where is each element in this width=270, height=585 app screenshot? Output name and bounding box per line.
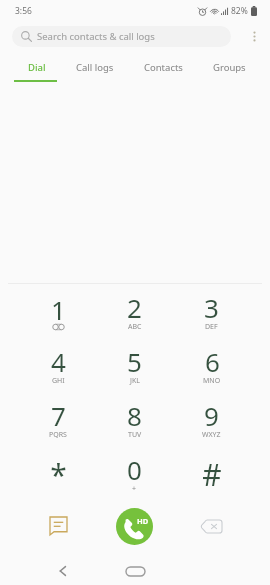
staticText: 8	[127, 398, 142, 433]
staticText: +	[132, 484, 137, 494]
button[interactable]: Call	[116, 508, 153, 545]
staticText: 9	[204, 398, 219, 433]
button[interactable]: 8	[96, 392, 173, 446]
staticText: MNO	[203, 376, 221, 386]
staticText: GHI	[52, 376, 65, 386]
staticText: Search contacts & call logs	[37, 30, 155, 43]
button[interactable]: 4	[20, 338, 96, 392]
button[interactable]: Groups	[198, 52, 261, 82]
button[interactable]: Call logs	[61, 52, 129, 82]
staticText: Dial	[28, 61, 46, 74]
button[interactable]: 2	[96, 284, 173, 338]
staticText: TUV	[128, 430, 142, 440]
button[interactable]: 9	[173, 392, 250, 446]
staticText: 0	[127, 452, 142, 487]
button[interactable]: 0	[96, 446, 173, 500]
staticText: 6	[205, 344, 220, 379]
button[interactable]: *	[20, 446, 96, 500]
button[interactable]: 3	[173, 284, 250, 338]
button[interactable]: 5	[96, 338, 173, 392]
staticText: ABC	[128, 322, 142, 332]
staticText: 3	[204, 290, 219, 325]
button[interactable]: #	[173, 446, 250, 500]
button[interactable]: 6	[173, 338, 250, 392]
staticText: 4	[51, 344, 66, 379]
button[interactable]: Dial	[13, 52, 61, 82]
staticText: 3:56	[15, 5, 32, 17]
staticText: 1	[51, 292, 66, 327]
staticText: WXYZ	[202, 430, 221, 440]
staticText: 7	[51, 398, 66, 433]
staticText: 2	[127, 290, 142, 325]
button[interactable]: 7	[20, 392, 96, 446]
staticText: DEF	[205, 322, 218, 332]
button[interactable]: Message	[20, 500, 96, 552]
button[interactable]: Home	[115, 559, 155, 583]
staticText: 82%	[231, 5, 248, 17]
button[interactable]: Contacts	[129, 52, 198, 82]
button[interactable]: Backspace	[173, 500, 250, 552]
staticText: JKL	[130, 376, 140, 386]
button[interactable]: 1	[20, 284, 96, 338]
staticText: 5	[127, 344, 142, 379]
button[interactable]: Back	[47, 556, 77, 585]
staticText: #	[202, 454, 222, 495]
staticText: HD	[137, 516, 149, 526]
staticText: Groups	[213, 61, 246, 74]
staticText: Call logs	[76, 61, 114, 74]
staticText: *	[50, 454, 67, 495]
staticText: Contacts	[144, 61, 183, 74]
button[interactable]: Search contacts & call logs	[12, 26, 231, 47]
staticText: PQRS	[49, 430, 67, 440]
button[interactable]: More options	[238, 21, 270, 52]
